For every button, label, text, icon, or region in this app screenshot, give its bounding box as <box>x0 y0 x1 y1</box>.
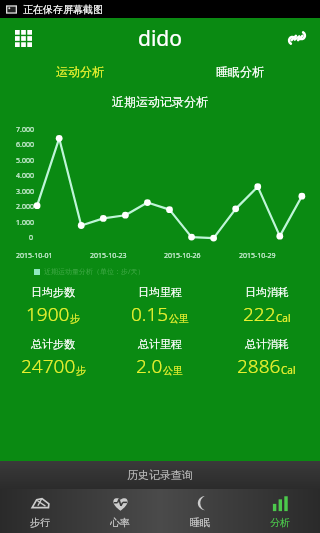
button[interactable]: 总计消耗 <box>213 337 320 379</box>
staticText: 睡眠 <box>190 516 210 529</box>
staticText: 步 <box>76 364 86 377</box>
staticText: 正在保存屏幕截图 <box>23 3 103 16</box>
staticText: 步行 <box>30 516 50 529</box>
button[interactable]: Link device <box>282 23 312 53</box>
button[interactable]: 日均消耗 <box>213 285 320 327</box>
staticText: 运动分析 <box>56 64 104 79</box>
button[interactable]: 分析 <box>240 489 320 533</box>
staticText: 总计消耗 <box>245 337 289 351</box>
staticText: 公里 <box>163 364 183 377</box>
staticText: 分析 <box>270 516 290 529</box>
button[interactable]: 运动分析 <box>0 58 160 84</box>
staticText: 0.15 <box>131 301 169 327</box>
staticText: 睡眠分析 <box>216 64 264 79</box>
button[interactable]: 睡眠分析 <box>160 58 320 84</box>
staticText: 步 <box>70 312 80 325</box>
staticText: 5.000 <box>16 156 34 166</box>
staticText: dido <box>138 24 182 53</box>
staticText: 心率 <box>110 516 130 529</box>
staticText: 日均步数 <box>31 285 75 299</box>
staticText: 近期运动记录分析 <box>0 94 320 109</box>
staticText: 3.000 <box>16 187 34 197</box>
staticText: 1900 <box>26 301 70 327</box>
staticText: 日均里程 <box>138 285 182 299</box>
button[interactable]: Menu <box>8 23 38 53</box>
staticText: 222 <box>243 301 276 327</box>
staticText: 总计步数 <box>31 337 75 351</box>
button[interactable]: 历史记录查询 <box>0 461 320 489</box>
button[interactable]: 总计里程 <box>106 337 213 379</box>
staticText: Cal <box>281 363 296 377</box>
staticText: 公里 <box>169 312 189 325</box>
staticText: 总计里程 <box>138 337 182 351</box>
button[interactable]: 日均里程 <box>106 285 213 327</box>
staticText: 2.0 <box>136 353 163 379</box>
button[interactable]: 心率 <box>80 489 160 533</box>
staticText: 1.000 <box>16 218 34 228</box>
staticText: 历史记录查询 <box>127 468 193 482</box>
staticText: 近期运动量分析（单位：步/天） <box>44 267 145 277</box>
staticText: 2886 <box>237 353 281 379</box>
button[interactable]: 睡眠 <box>160 489 240 533</box>
button[interactable]: 步行 <box>0 489 80 533</box>
staticText: 2015-10-29 <box>239 251 276 261</box>
staticText: 6.000 <box>16 140 34 150</box>
staticText: 0 <box>29 233 34 243</box>
staticText: 7.000 <box>16 125 34 135</box>
staticText: Cal <box>276 311 291 325</box>
button[interactable]: 总计步数 <box>0 337 106 379</box>
staticText: 2015-10-23 <box>90 251 127 261</box>
staticText: 2.000 <box>16 202 34 212</box>
staticText: 2015-10-26 <box>164 251 201 261</box>
staticText: 4.000 <box>16 171 34 181</box>
staticText: 24700 <box>21 353 76 379</box>
button[interactable]: 日均步数 <box>0 285 106 327</box>
staticText: 2015-10-01 <box>16 251 53 261</box>
staticText: 日均消耗 <box>245 285 289 299</box>
